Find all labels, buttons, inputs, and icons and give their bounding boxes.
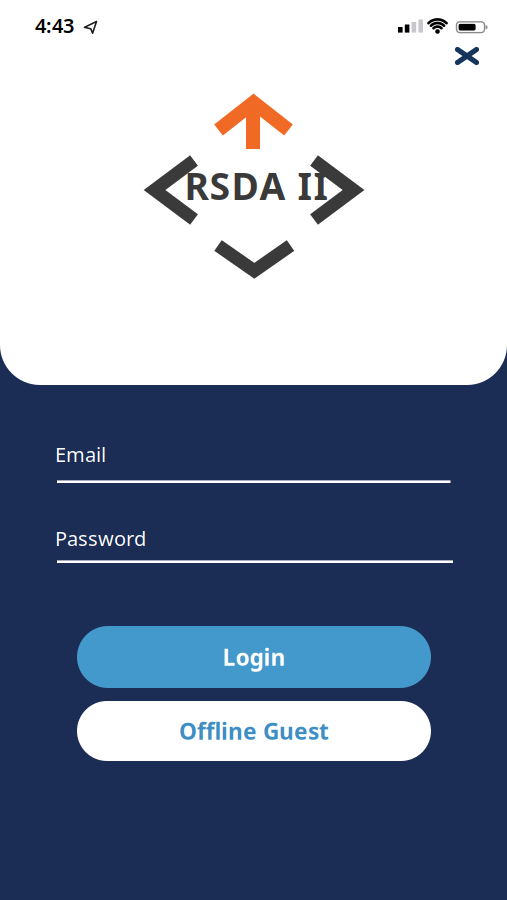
- staticText: Email: [55, 441, 106, 468]
- staticText: RSDA II: [184, 161, 328, 210]
- button[interactable]: Login: [77, 626, 431, 688]
- staticText: Offline Guest: [179, 716, 329, 746]
- button[interactable]: [445, 34, 489, 78]
- button[interactable]: Email: [57, 441, 450, 483]
- staticText: Login: [222, 642, 285, 672]
- staticText: 4:43: [35, 12, 74, 39]
- button[interactable]: Offline Guest: [77, 701, 431, 761]
- staticText: Password: [55, 525, 146, 552]
- button[interactable]: Password: [57, 525, 453, 563]
